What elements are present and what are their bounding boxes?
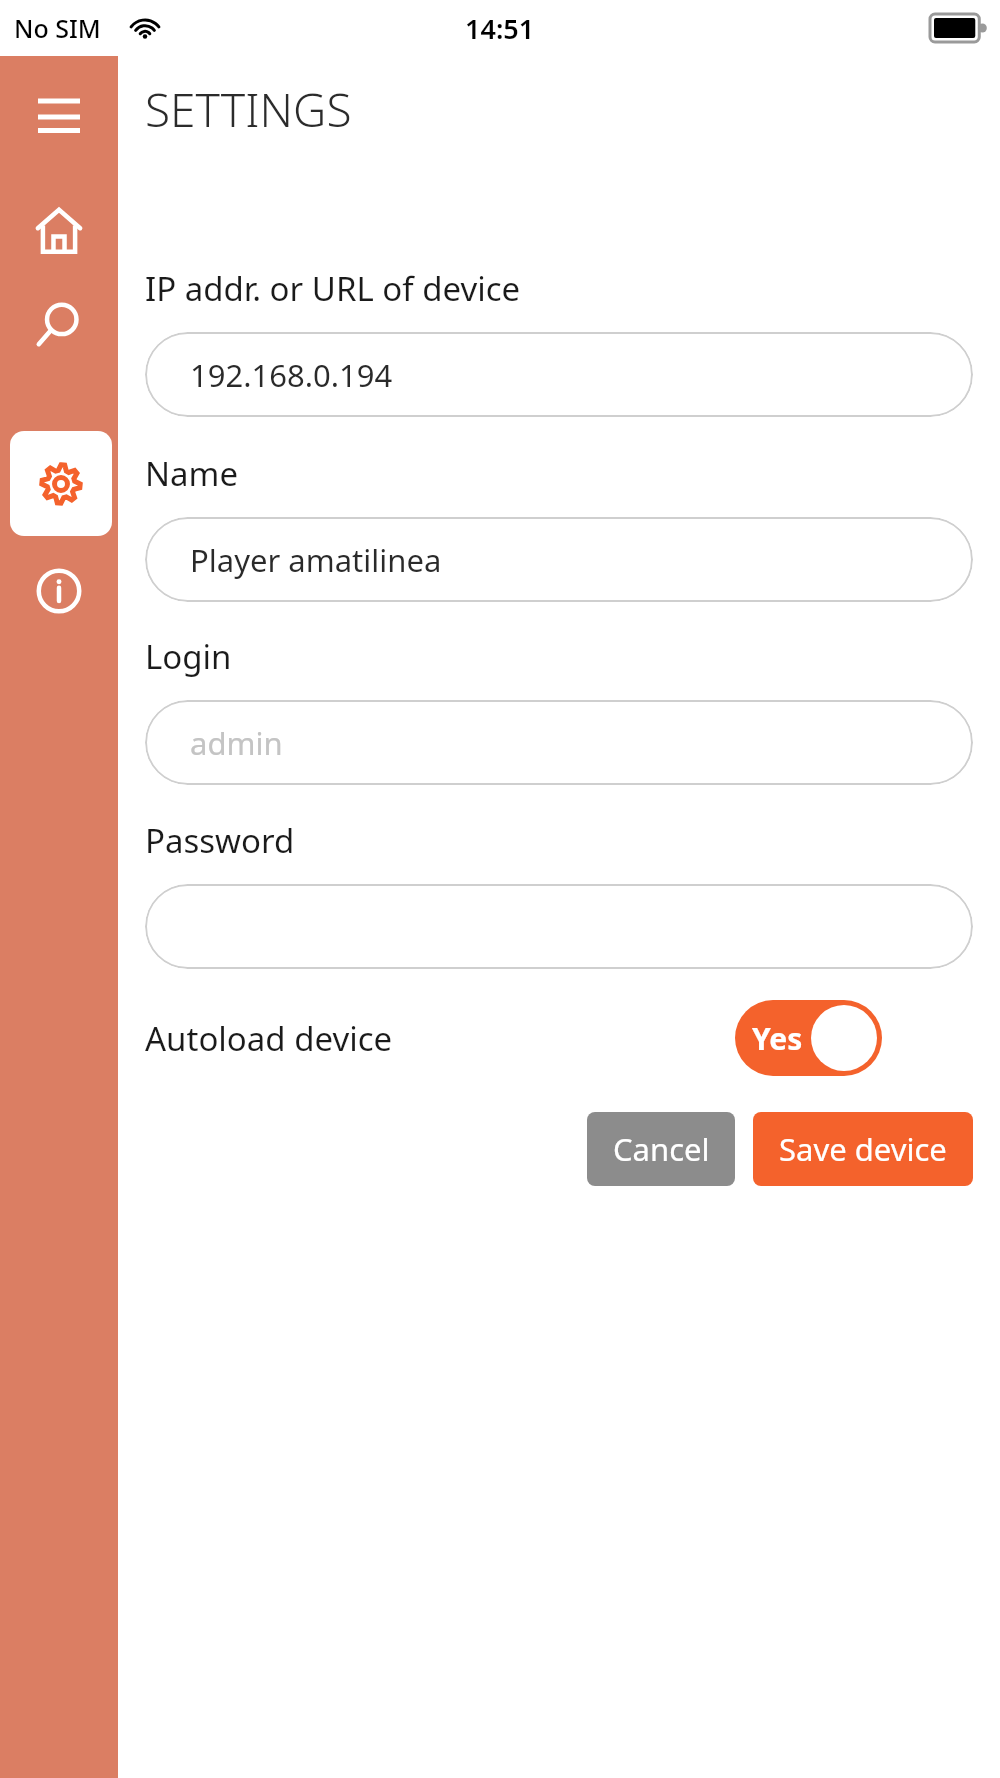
staticText: IP addr. or URL of device: [145, 266, 521, 311]
button[interactable]: Search: [0, 289, 118, 359]
staticText: Autoload device: [145, 1016, 393, 1061]
staticText: Login: [145, 634, 232, 679]
button[interactable]: Save device: [753, 1112, 973, 1186]
button[interactable]: admin: [145, 700, 973, 785]
button[interactable]: Home: [0, 196, 118, 266]
button[interactable]: Cancel: [587, 1112, 735, 1186]
staticText: Yes: [752, 1018, 803, 1059]
staticText: Cancel: [613, 1128, 710, 1170]
staticText: Name: [145, 451, 239, 496]
staticText: Password: [145, 818, 295, 863]
button[interactable]: Info: [0, 556, 118, 626]
button[interactable]: 192.168.0.194: [145, 332, 973, 417]
staticText: admin: [190, 722, 283, 764]
staticText: No SIM: [14, 11, 101, 45]
button[interactable]: Autoload device toggle, on: [735, 1000, 882, 1076]
staticText: Player amatilinea: [190, 539, 442, 581]
staticText: 192.168.0.194: [190, 354, 393, 396]
staticText: Save device: [779, 1128, 947, 1170]
staticText: SETTINGS: [145, 78, 352, 141]
button[interactable]: Player amatilinea: [145, 517, 973, 602]
button[interactable]: Settings: [10, 431, 112, 536]
button[interactable]: Menu: [0, 86, 118, 148]
staticText: 14:51: [465, 10, 535, 47]
button[interactable]: [145, 884, 973, 969]
